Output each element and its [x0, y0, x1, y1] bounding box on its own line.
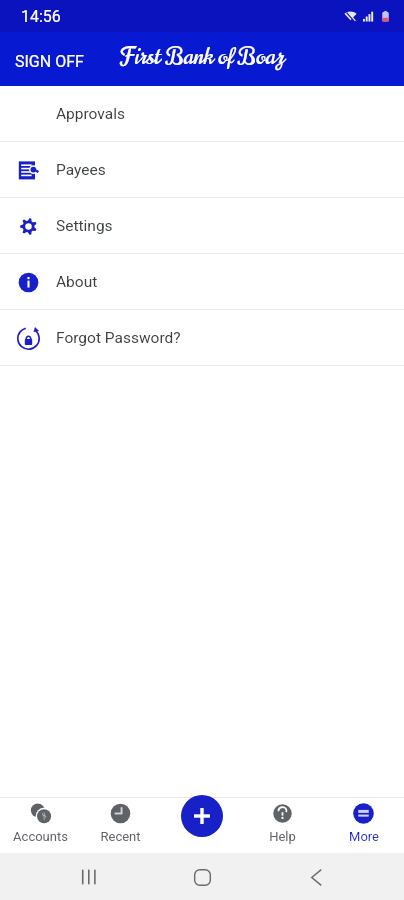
staticText: SIGN OFF	[15, 52, 84, 71]
button[interactable]: Payees	[0, 142, 404, 198]
button[interactable]: Accounts	[0, 797, 80, 848]
button[interactable]: Back	[304, 865, 328, 889]
staticText: More	[349, 829, 379, 844]
button[interactable]: Forgot Password?	[0, 310, 404, 366]
button[interactable]: Recent apps	[76, 865, 100, 889]
button[interactable]: Home	[190, 865, 214, 889]
staticText: 14:56	[21, 7, 61, 26]
button[interactable]: Recent	[80, 797, 161, 848]
button[interactable]: About	[0, 254, 404, 310]
staticText: Help	[269, 829, 296, 844]
staticText: Approvals	[56, 105, 125, 123]
staticText: Recent	[100, 829, 141, 844]
button[interactable]: Help	[242, 797, 323, 848]
staticText: Payees	[56, 161, 106, 179]
button[interactable]: Settings	[0, 198, 404, 254]
staticText: First Bank of Boaz	[120, 40, 285, 72]
button[interactable]: Add	[181, 795, 223, 837]
button[interactable]: SIGN OFF	[0, 38, 99, 81]
staticText: Accounts	[13, 829, 68, 844]
staticText: About	[56, 273, 98, 291]
button[interactable]: Approvals	[0, 86, 404, 142]
button[interactable]: More	[323, 797, 404, 848]
staticText: Forgot Password?	[56, 329, 181, 347]
staticText: Settings	[56, 217, 113, 235]
